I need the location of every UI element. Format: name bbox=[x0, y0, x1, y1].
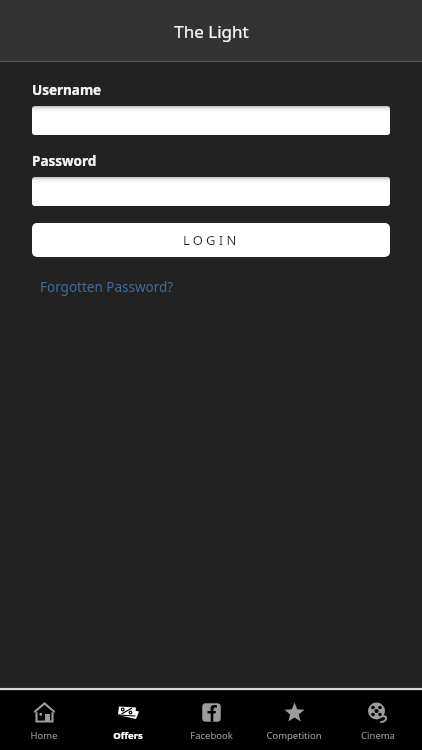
staticText: Password bbox=[32, 152, 97, 170]
button[interactable]: Offers bbox=[89, 696, 167, 746]
staticText: Forgotten Password? bbox=[40, 278, 174, 296]
button[interactable]: Facebook bbox=[172, 696, 250, 746]
staticText: Offers bbox=[113, 729, 143, 742]
staticText: Competition bbox=[266, 729, 322, 742]
button[interactable] bbox=[32, 106, 390, 135]
staticText: Facebook bbox=[190, 729, 233, 742]
button[interactable]: Forgotten Password? bbox=[32, 274, 182, 300]
staticText: The Light bbox=[174, 20, 249, 43]
staticText: Cinema bbox=[361, 729, 395, 742]
staticText: Home bbox=[30, 729, 58, 742]
button[interactable]: LOGIN bbox=[32, 223, 390, 257]
staticText: Username bbox=[32, 81, 102, 99]
button[interactable]: Home bbox=[5, 696, 83, 746]
button[interactable]: Cinema bbox=[339, 696, 417, 746]
button[interactable]: Competition bbox=[255, 696, 333, 746]
button[interactable] bbox=[32, 177, 390, 206]
staticText: LOGIN bbox=[183, 231, 240, 249]
